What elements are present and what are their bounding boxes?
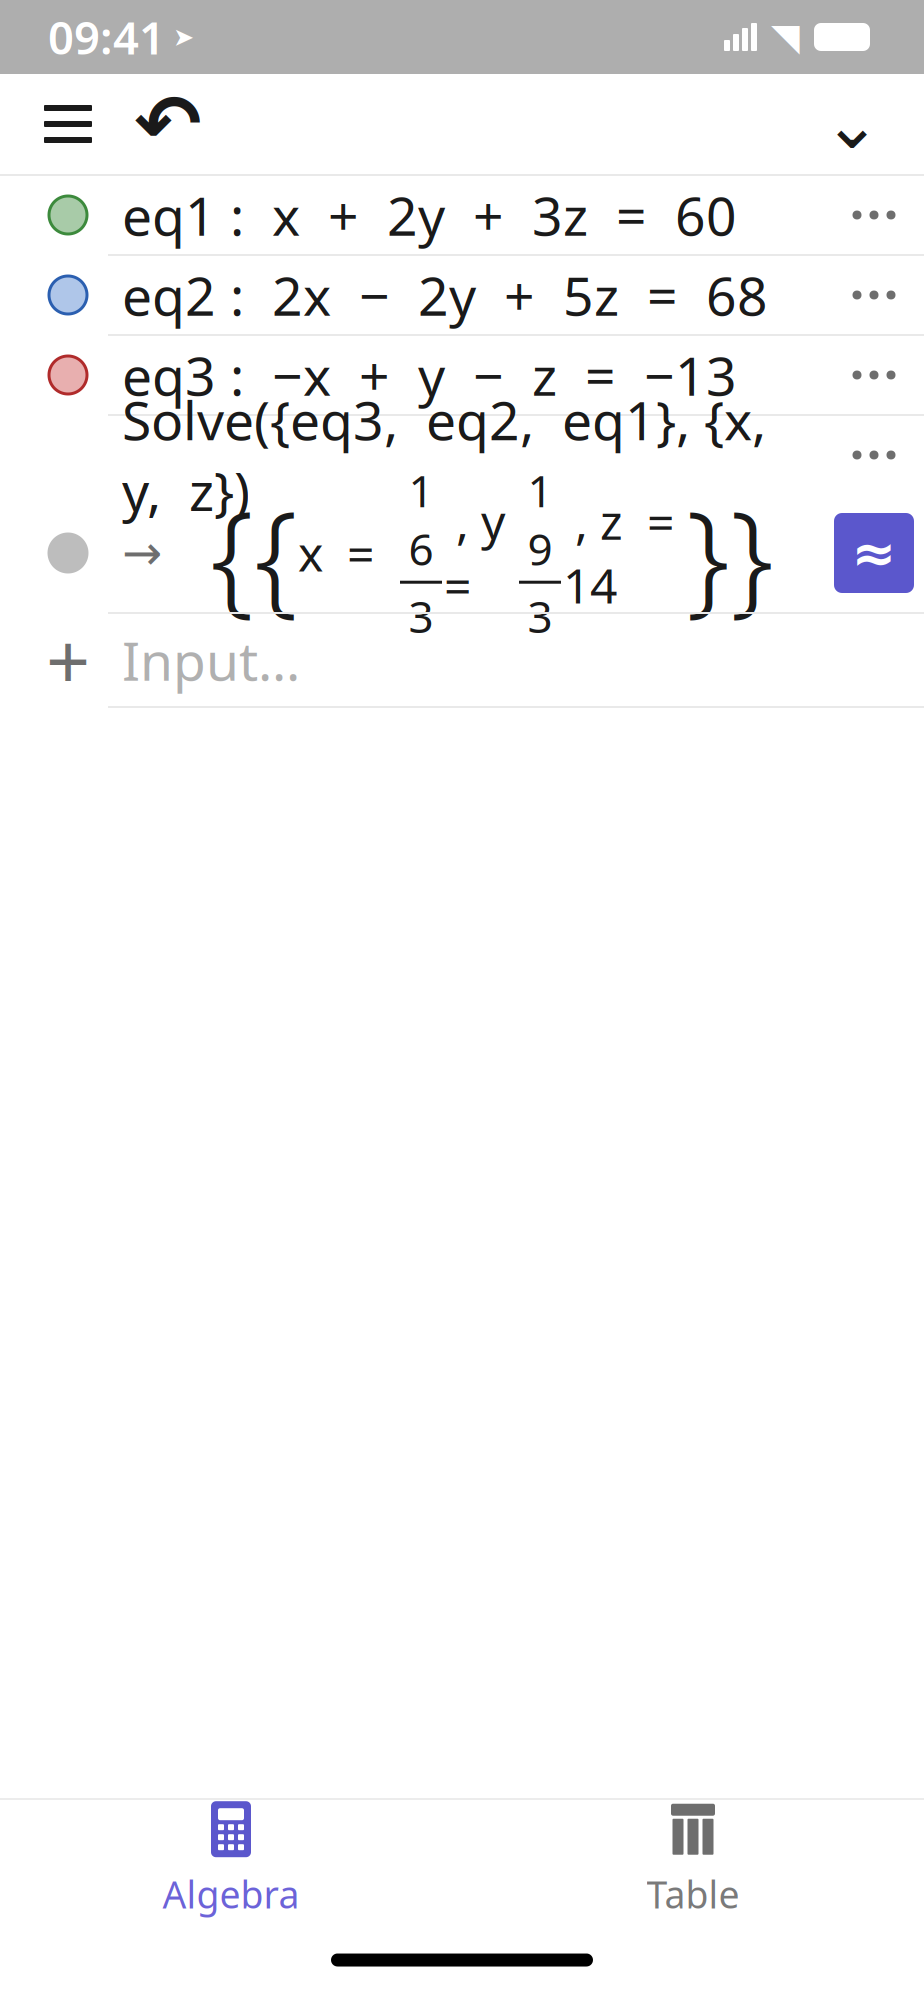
button[interactable]: eq3 : −x + y − z = −13 (122, 336, 824, 414)
button[interactable]: Undo (118, 74, 218, 174)
staticText: ➤ (173, 23, 194, 51)
staticText: 09:41 (48, 7, 165, 67)
staticText: } (686, 472, 730, 634)
button[interactable]: Algebra (0, 1800, 462, 1920)
button[interactable]: Row options (824, 336, 924, 414)
button[interactable]: New input row (14, 614, 122, 706)
staticText: , y = (444, 489, 517, 617)
staticText: ↶ (134, 79, 201, 169)
staticText: Solve({eq3, eq2, eq1}, {x, y, z}) (122, 384, 780, 526)
staticText: ⌄ (823, 85, 881, 163)
staticText: eq3 : −x + y − z = −13 (122, 340, 737, 410)
button[interactable]: Input... (122, 614, 924, 706)
button[interactable]: Show approximate value (834, 513, 914, 593)
button[interactable]: → (122, 494, 824, 612)
staticText: Algebra (162, 1869, 299, 1919)
button[interactable]: Solve({eq3, eq2, eq1}, {x, y, z}) (122, 416, 824, 494)
button[interactable]: Row options (824, 416, 924, 494)
staticText: } (730, 472, 774, 634)
button[interactable]: Collapse view (802, 74, 902, 174)
staticText: ◥ (771, 16, 800, 58)
staticText: 3 (408, 587, 433, 645)
staticText: Input... (122, 625, 300, 695)
staticText: , z = 14 (563, 489, 686, 617)
button[interactable]: Table (462, 1800, 924, 1920)
staticText: { (254, 472, 298, 634)
staticText: eq2 : 2x − 2y + 5z = 68 (122, 260, 768, 330)
button[interactable]: Menu (18, 74, 118, 174)
button[interactable]: eq2 : 2x − 2y + 5z = 68 (122, 256, 824, 334)
staticText: Table (646, 1869, 739, 1919)
button[interactable]: eq1 : x + 2y + 3z = 60 (122, 176, 824, 254)
button[interactable]: Row options (824, 256, 924, 334)
staticText: 16 (408, 461, 433, 578)
staticText: x = (298, 521, 398, 585)
staticText: ≈ (851, 523, 896, 583)
staticText: 19 (527, 461, 552, 578)
staticText: { (210, 472, 254, 634)
button[interactable]: Row options (824, 176, 924, 254)
staticText: eq1 : x + 2y + 3z = 60 (122, 180, 737, 250)
staticText: 3 (527, 587, 552, 645)
staticText: → (122, 526, 162, 580)
staticText: + (46, 609, 90, 711)
